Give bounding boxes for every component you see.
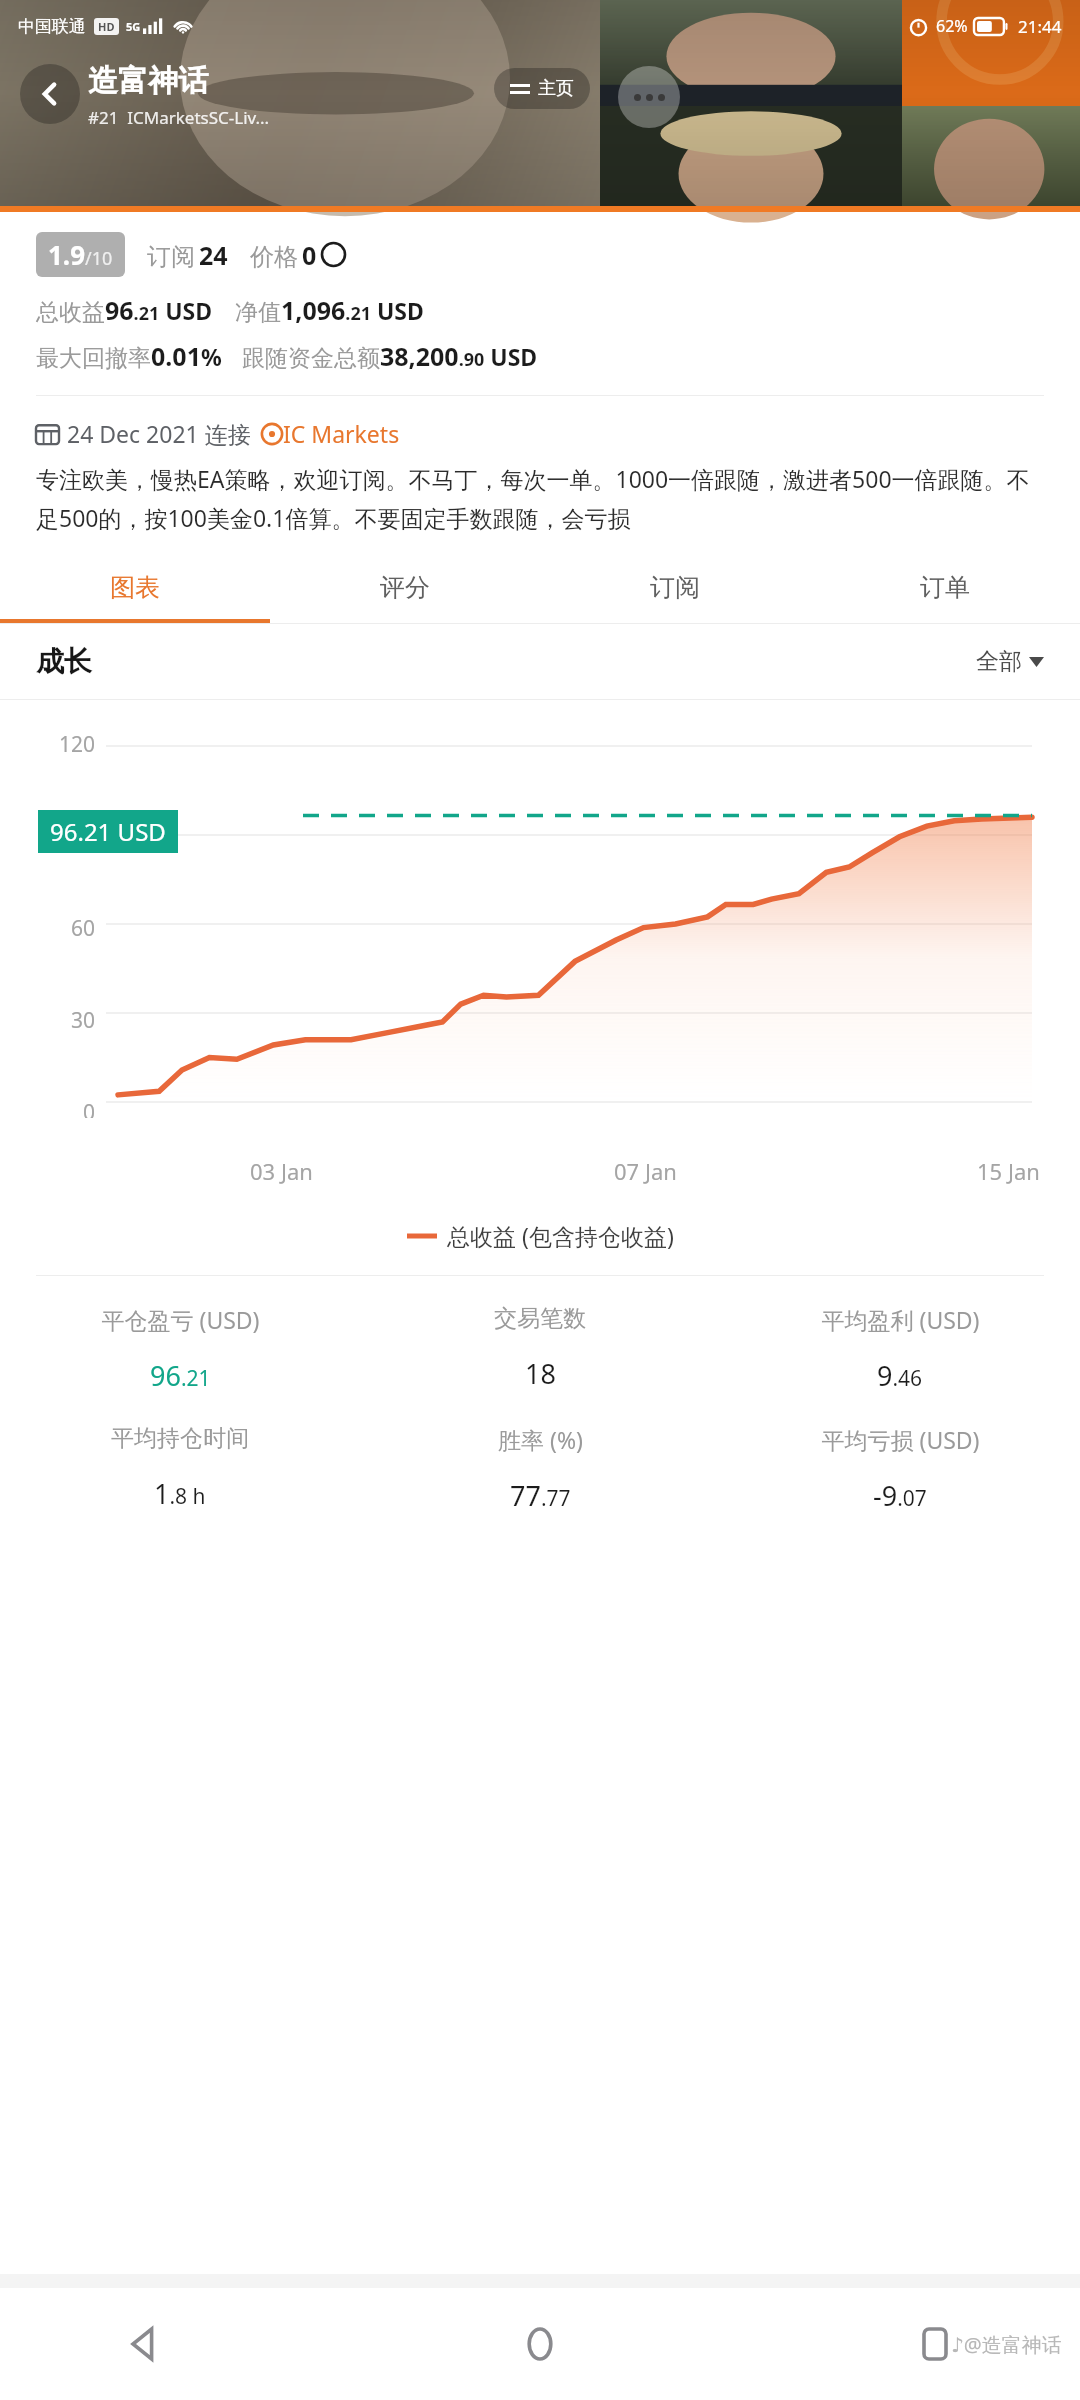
staticText: 18 — [525, 1355, 556, 1392]
staticText: 造富神话 — [88, 62, 208, 100]
staticText: ♪@造富神话 — [951, 2331, 1062, 2358]
staticText: 跟随资金总额38,200.90 USD — [242, 339, 538, 373]
staticText: 平仓盈亏 (USD) — [101, 1304, 260, 1335]
staticText: 24 Dec 2021 连接 — [67, 418, 251, 449]
staticText: 15 Jan — [977, 1156, 1040, 1186]
staticText: HD — [98, 19, 115, 34]
staticText: 专注欧美，慢热EA策略，欢迎订阅。不马丁，每次一单。1000一倍跟随，激进者50… — [36, 463, 1050, 534]
staticText: 评分 — [380, 572, 430, 603]
staticText: 0 — [302, 238, 317, 272]
staticText: #21 ICMarketsSC-Liv... — [88, 106, 270, 129]
staticText: 图表 — [110, 572, 160, 603]
button[interactable]: 订单 — [810, 556, 1080, 623]
staticText: 净值1,096.21 USD — [235, 293, 424, 327]
staticText: 成长 — [36, 644, 92, 679]
staticText: 平均亏损 (USD) — [821, 1424, 980, 1455]
staticText: IC Markets — [283, 418, 400, 449]
staticText: 主页 — [538, 77, 574, 100]
staticText: 60 — [71, 914, 96, 943]
button[interactable]: 订阅 — [540, 556, 810, 623]
staticText: -9.07 — [873, 1477, 927, 1514]
staticText: 中国联通 — [18, 16, 86, 37]
staticText: 9.46 — [877, 1357, 923, 1394]
staticText: 0 — [83, 1098, 96, 1118]
staticText: 1.9/10 — [48, 237, 113, 272]
staticText: 96.21 USD — [50, 815, 166, 848]
button[interactable]: 评分 — [270, 556, 540, 623]
staticText: 24 — [199, 238, 228, 272]
staticText: 价格 — [250, 242, 298, 272]
staticText: 胜率 (%) — [498, 1424, 583, 1455]
button[interactable]: IC Markets — [261, 418, 400, 449]
button[interactable]: 主页 — [494, 68, 590, 109]
staticText: 77.77 — [510, 1477, 571, 1514]
button[interactable]: Back — [20, 64, 80, 124]
button[interactable]: Back — [110, 2309, 180, 2379]
button[interactable]: Home — [505, 2309, 575, 2379]
button[interactable]: 全部 — [976, 647, 1044, 676]
staticText: 120 — [59, 730, 96, 759]
staticText: 96.21 — [150, 1357, 211, 1394]
staticText: 总收益 (包含持仓收益) — [447, 1220, 674, 1251]
staticText: 62% — [936, 15, 968, 37]
staticText: 平均持仓时间 — [111, 1424, 249, 1453]
staticText: 全部 — [976, 647, 1022, 676]
button[interactable]: Recent apps — [900, 2309, 970, 2379]
staticText: 订阅 — [147, 242, 195, 272]
staticText: 交易笔数 — [494, 1304, 586, 1333]
staticText: 5G — [126, 19, 141, 34]
button[interactable]: More options — [618, 66, 680, 128]
staticText: 订单 — [920, 572, 970, 603]
staticText: 30 — [71, 1006, 96, 1035]
staticText: 总收益96.21 USD — [36, 293, 213, 327]
staticText: 1.8 h — [154, 1475, 206, 1512]
staticText: 07 Jan — [614, 1156, 677, 1186]
button[interactable]: 图表 — [0, 556, 270, 623]
staticText: 订阅 — [650, 572, 700, 603]
staticText: 21:44 — [1018, 15, 1062, 38]
staticText: 90 — [71, 822, 96, 851]
staticText: 03 Jan — [250, 1156, 313, 1186]
staticText: 最大回撤率0.01% — [36, 339, 222, 373]
staticText: 平均盈利 (USD) — [821, 1304, 980, 1335]
